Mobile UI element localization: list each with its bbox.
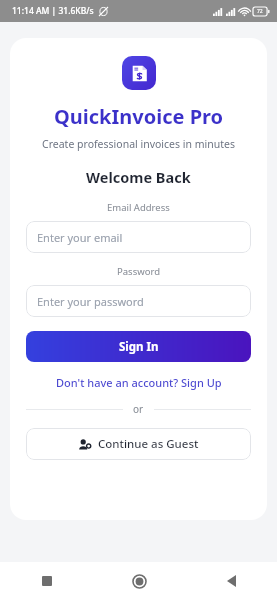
staticText: Email Address [107, 201, 170, 214]
button[interactable]: Enter your email [26, 221, 251, 253]
staticText: 72 [257, 8, 263, 15]
button[interactable]: Back [185, 562, 277, 600]
staticText: Don't have an account? Sign Up [56, 375, 222, 390]
staticText: Welcome Back [86, 167, 191, 187]
staticText: Sign In [119, 339, 159, 355]
staticText: Continue as Guest [98, 436, 199, 452]
staticText: Password [117, 265, 160, 278]
staticText: Create professional invoices in minutes [42, 137, 235, 151]
staticText: QuickInvoice Pro [54, 103, 224, 130]
button[interactable]: Home [93, 562, 185, 600]
staticText: 11:14 AM | 31.6KB/s [12, 5, 94, 17]
staticText: Enter your email [37, 230, 123, 245]
button[interactable]: Enter your password [26, 285, 251, 317]
button[interactable]: Don't have an account? Sign Up [26, 375, 251, 390]
button[interactable]: Sign In [26, 331, 251, 362]
staticText: or [133, 402, 144, 416]
button[interactable]: Continue as Guest [26, 428, 251, 460]
staticText: Enter your password [37, 294, 144, 309]
button[interactable]: Recent apps [0, 562, 93, 600]
